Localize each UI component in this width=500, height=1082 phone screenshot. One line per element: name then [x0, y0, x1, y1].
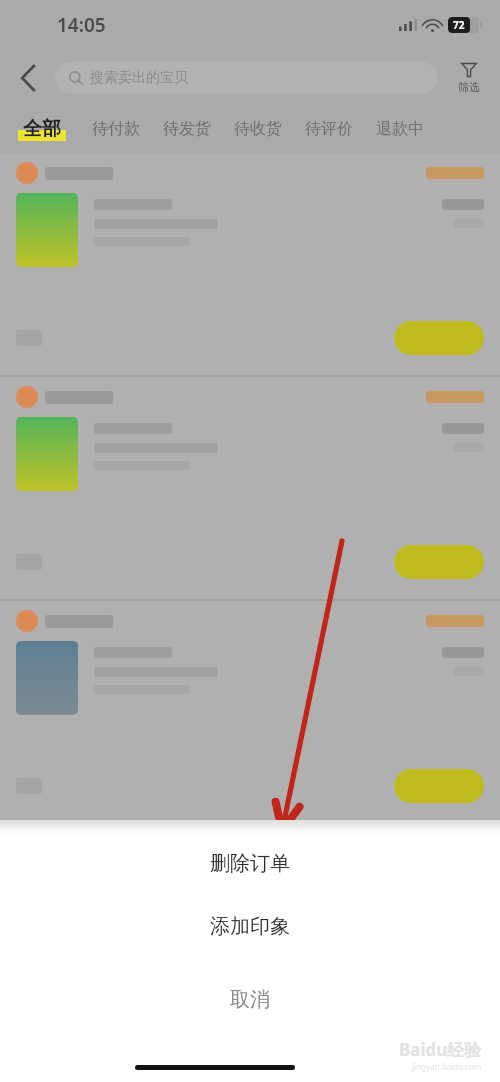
staticText: Baidu经验 — [399, 1038, 482, 1061]
button[interactable]: 添加印象 — [0, 892, 500, 960]
staticText: 待收货 — [234, 119, 282, 139]
button[interactable]: 全部 — [18, 117, 66, 141]
button[interactable]: 搜索卖出的宝贝 — [55, 62, 438, 94]
staticText: 筛选 — [458, 80, 480, 94]
staticText: 72 — [453, 18, 465, 32]
staticText: jingyan.baidu.com — [412, 1061, 482, 1072]
button[interactable] — [394, 321, 484, 355]
staticText: 全部 — [23, 117, 61, 141]
button[interactable] — [0, 601, 500, 825]
staticText: 退款中 — [376, 119, 424, 139]
button[interactable] — [394, 545, 484, 579]
button[interactable]: 取消 — [0, 960, 500, 1038]
button[interactable]: 删除订单 — [0, 834, 500, 892]
staticText: 14:05 — [57, 12, 106, 38]
staticText: 搜索卖出的宝贝 — [90, 69, 188, 87]
staticText: 待付款 — [92, 119, 140, 139]
button[interactable] — [0, 153, 500, 377]
button[interactable]: 筛选 — [438, 50, 500, 105]
button[interactable]: 待付款 — [92, 119, 140, 139]
button[interactable]: 退款中 — [376, 119, 424, 139]
button[interactable]: 待评价 — [305, 119, 353, 139]
button[interactable] — [394, 769, 484, 803]
staticText: 删除订单 — [210, 851, 290, 876]
button[interactable]: 待发货 — [163, 119, 211, 139]
button[interactable]: 待收货 — [234, 119, 282, 139]
button[interactable] — [0, 825, 500, 1049]
button[interactable] — [0, 377, 500, 601]
button[interactable]: Back — [0, 50, 55, 105]
staticText: 添加印象 — [210, 914, 290, 939]
staticText: 取消 — [230, 987, 270, 1012]
staticText: 待发货 — [163, 119, 211, 139]
staticText: 待评价 — [305, 119, 353, 139]
